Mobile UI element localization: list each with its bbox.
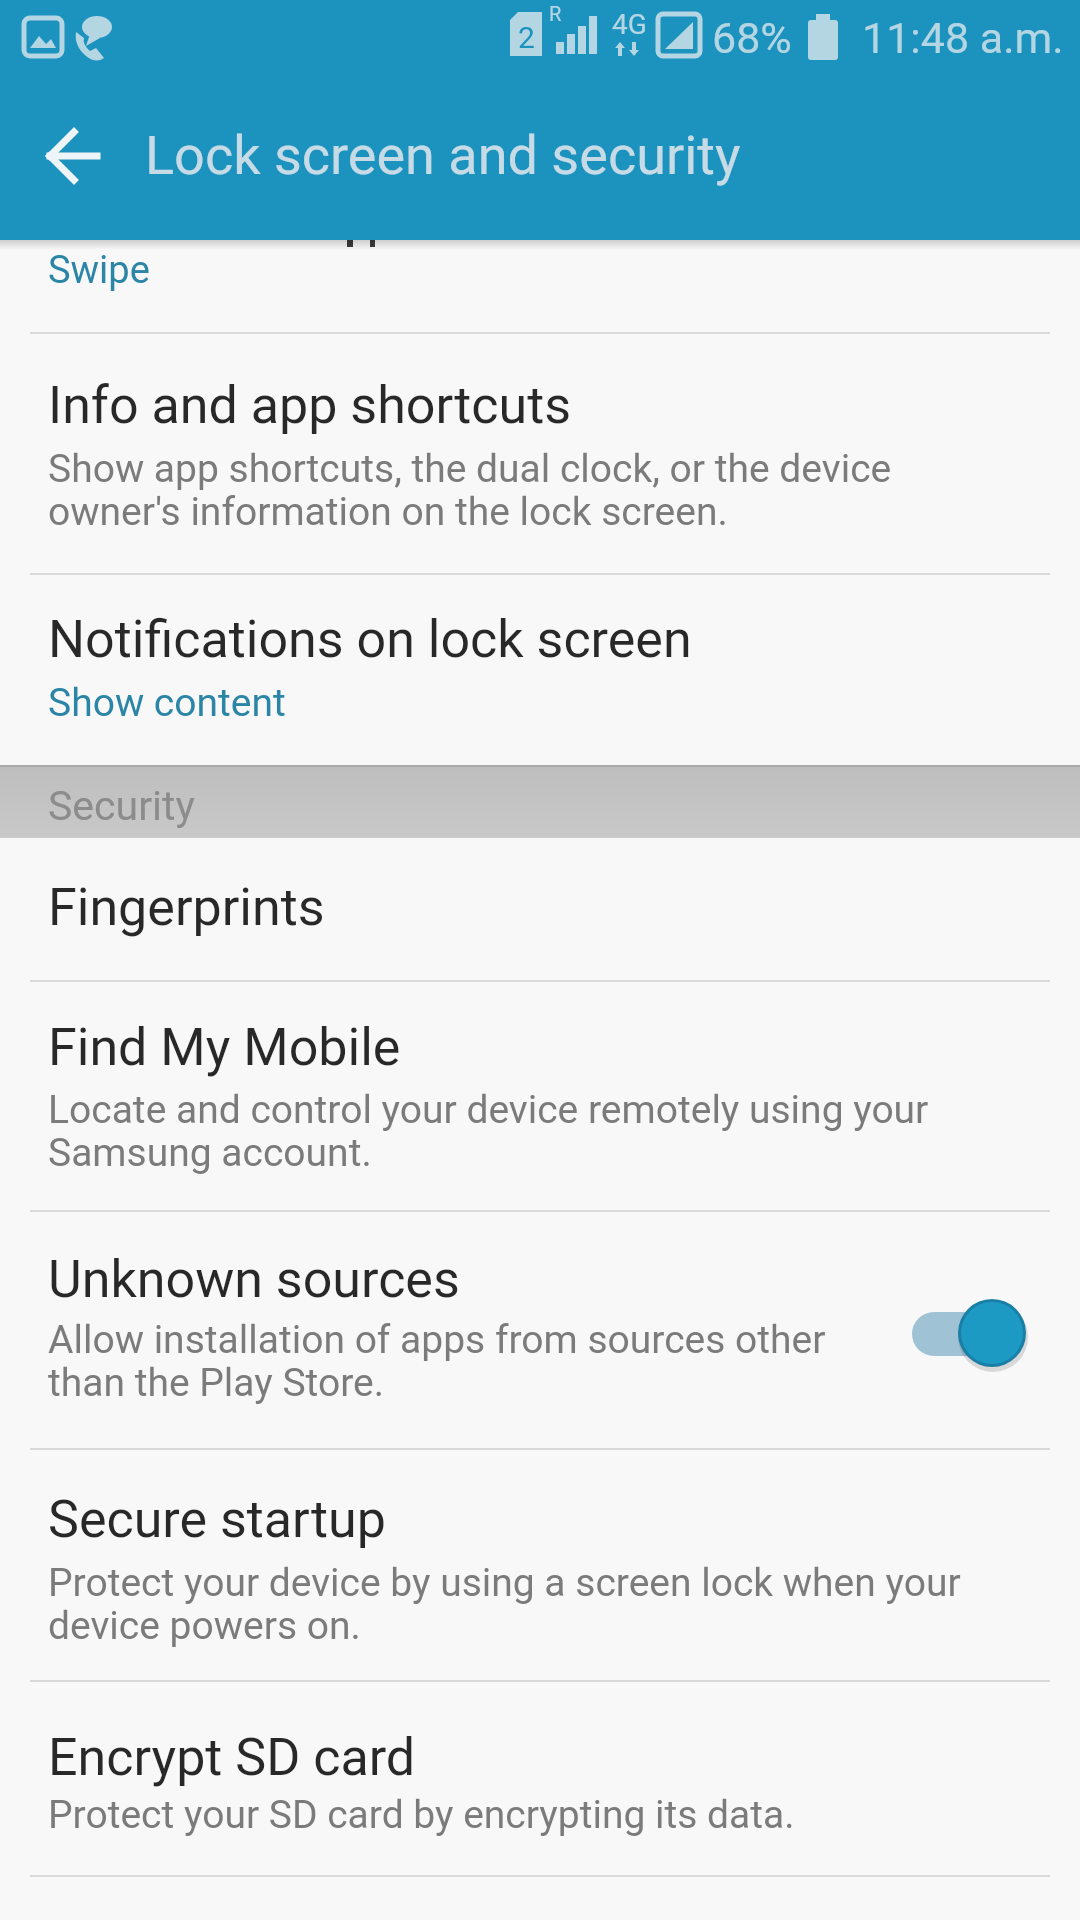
staticText: Allow installation of apps from sources … bbox=[48, 1317, 826, 1363]
staticText: Info and app shortcuts bbox=[48, 375, 572, 436]
staticText: Encrypt SD card bbox=[48, 1727, 416, 1788]
button[interactable]: Notifications on lock screen bbox=[0, 575, 1080, 765]
staticText: Notifications on lock screen bbox=[48, 609, 692, 670]
button[interactable]: Find My Mobile bbox=[0, 982, 1080, 1210]
button[interactable]: Secure startup bbox=[0, 1450, 1080, 1680]
button[interactable] bbox=[48, 130, 100, 182]
button[interactable]: Swipe bbox=[0, 240, 1080, 332]
staticText: Lock screen and security bbox=[145, 124, 741, 187]
staticText: than the Play Store. bbox=[48, 1360, 384, 1406]
staticText: owner's information on the lock screen. bbox=[48, 489, 728, 535]
staticText: Samsung account. bbox=[48, 1130, 372, 1176]
staticText: Security bbox=[48, 782, 195, 830]
staticText: 68% bbox=[712, 13, 792, 63]
staticText: Show content bbox=[48, 680, 286, 726]
staticText: Swipe bbox=[48, 248, 150, 293]
staticText: Find My Mobile bbox=[48, 1017, 401, 1078]
staticText: Locate and control your device remotely … bbox=[48, 1087, 929, 1133]
staticText: Protect your device by using a screen lo… bbox=[48, 1560, 961, 1606]
staticText: Secure startup bbox=[48, 1489, 386, 1550]
button[interactable]: Unknown sources bbox=[0, 1212, 1080, 1448]
staticText: 2 bbox=[518, 20, 535, 55]
staticText: Unknown sources bbox=[48, 1249, 460, 1310]
button[interactable]: Fingerprints bbox=[0, 838, 1080, 980]
staticText: 11:48 a.m. bbox=[862, 13, 1064, 63]
staticText: Protect your SD card by encrypting its d… bbox=[48, 1792, 795, 1838]
staticText: Fingerprints bbox=[48, 877, 325, 938]
staticText: 4G bbox=[612, 8, 647, 41]
button[interactable]: Info and app shortcuts bbox=[0, 334, 1080, 573]
staticText: R bbox=[549, 2, 562, 25]
staticText: device powers on. bbox=[48, 1603, 361, 1649]
button[interactable]: Encrypt SD card bbox=[0, 1682, 1080, 1875]
staticText: Show app shortcuts, the dual clock, or t… bbox=[48, 446, 892, 492]
